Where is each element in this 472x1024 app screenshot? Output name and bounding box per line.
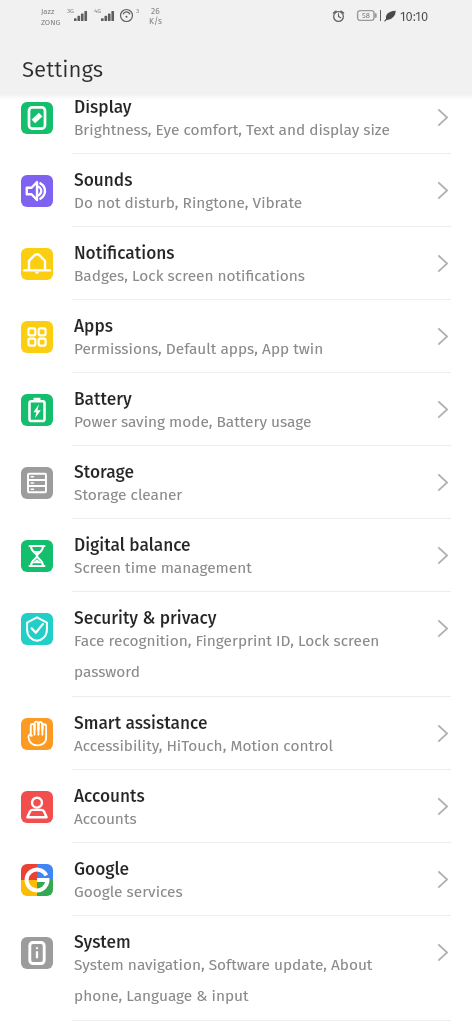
- staticText: Permissions, Default apps, App twin: [74, 340, 324, 358]
- staticText: Google: [74, 859, 130, 880]
- button[interactable]: Digital balance: [0, 519, 472, 592]
- button[interactable]: Battery: [0, 373, 472, 446]
- staticText: Power saving mode, Battery usage: [74, 413, 312, 431]
- button[interactable]: Google: [0, 843, 472, 916]
- staticText: 4G: [94, 7, 102, 14]
- button[interactable]: Security & privacy: [0, 592, 472, 697]
- staticText: K/s: [149, 16, 162, 26]
- staticText: Apps: [74, 316, 113, 337]
- staticText: Accounts: [74, 810, 137, 828]
- staticText: Google services: [74, 883, 183, 901]
- staticText: Brightness, Eye comfort, Text and displa…: [74, 121, 390, 139]
- staticText: Accessibility, HiTouch, Motion control: [74, 737, 333, 755]
- staticText: Do not disturb, Ringtone, Vibrate: [74, 194, 303, 212]
- staticText: Storage: [74, 462, 134, 483]
- staticText: Notifications: [74, 243, 175, 264]
- staticText: Sounds: [74, 170, 133, 191]
- staticText: 3G: [67, 7, 74, 14]
- button[interactable]: Display: [0, 81, 472, 154]
- staticText: Digital balance: [74, 535, 191, 556]
- staticText: 58: [362, 11, 370, 20]
- staticText: Smart assistance: [74, 713, 208, 734]
- staticText: Jazz: [41, 7, 55, 16]
- staticText: Security & privacy: [74, 608, 217, 629]
- staticText: Display: [74, 97, 132, 118]
- staticText: System: [74, 932, 131, 953]
- staticText: 3: [136, 7, 140, 14]
- staticText: Battery: [74, 389, 132, 410]
- button[interactable]: System: [0, 916, 472, 1021]
- staticText: Badges, Lock screen notifications: [74, 267, 305, 285]
- button[interactable]: Smart assistance: [0, 697, 472, 770]
- staticText: Screen time management: [74, 559, 252, 577]
- staticText: Face recognition, Fingerprint ID, Lock s…: [74, 632, 399, 681]
- staticText: Settings: [22, 56, 104, 83]
- button[interactable]: Apps: [0, 300, 472, 373]
- button[interactable]: Notifications: [0, 227, 472, 300]
- button[interactable]: Storage: [0, 446, 472, 519]
- staticText: 26: [151, 6, 160, 16]
- staticText: Accounts: [74, 786, 145, 807]
- button[interactable]: Sounds: [0, 154, 472, 227]
- staticText: Storage cleaner: [74, 486, 183, 504]
- staticText: ZONG: [41, 18, 61, 27]
- staticText: 10:10: [400, 9, 429, 24]
- button[interactable]: Accounts: [0, 770, 472, 843]
- staticText: System navigation, Software update, Abou…: [74, 956, 399, 1005]
